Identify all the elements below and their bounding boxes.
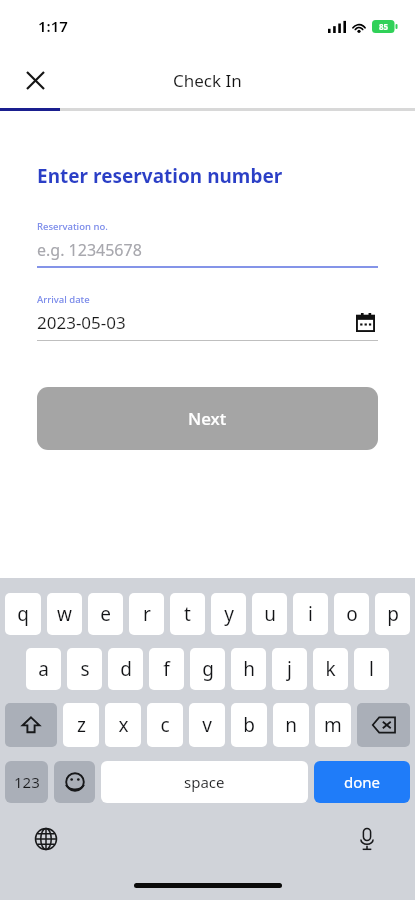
staticText: z — [77, 712, 86, 738]
button[interactable]: n — [273, 703, 309, 747]
staticText: w — [57, 601, 72, 627]
staticText: h — [243, 656, 255, 682]
button[interactable]: b — [231, 703, 267, 747]
staticText: n — [285, 712, 297, 738]
button[interactable]: l — [354, 648, 389, 690]
staticText: t — [184, 601, 191, 627]
button[interactable]: e.g. 12345678 — [37, 238, 378, 262]
button[interactable]: done — [314, 761, 410, 803]
button[interactable]: Shift — [5, 703, 57, 747]
button[interactable]: w — [47, 593, 82, 635]
button[interactable]: d — [108, 648, 143, 690]
button[interactable]: s — [67, 648, 102, 690]
button[interactable]: m — [315, 703, 351, 747]
button[interactable]: x — [105, 703, 141, 747]
staticText: s — [80, 656, 90, 682]
staticText: Enter reservation number — [37, 163, 283, 189]
button[interactable]: j — [272, 648, 307, 690]
button[interactable]: g — [190, 648, 225, 690]
button[interactable]: 2023-05-03 — [37, 309, 378, 335]
button[interactable]: z — [63, 703, 99, 747]
staticText: m — [324, 712, 342, 738]
button[interactable]: Backspace — [357, 703, 410, 747]
staticText: d — [120, 656, 132, 682]
staticText: v — [202, 712, 212, 738]
staticText: Reservation no. — [37, 220, 108, 233]
staticText: e.g. 12345678 — [37, 239, 142, 261]
staticText: 2023-05-03 — [37, 311, 352, 334]
button[interactable]: v — [189, 703, 225, 747]
staticText: a — [38, 656, 49, 682]
button[interactable]: h — [231, 648, 266, 690]
staticText: Arrival date — [37, 293, 90, 306]
staticText: j — [287, 656, 292, 682]
staticText: x — [118, 712, 129, 738]
button[interactable]: e — [88, 593, 123, 635]
staticText: space — [184, 772, 225, 792]
staticText: 123 — [14, 772, 40, 792]
button[interactable]: o — [334, 593, 369, 635]
staticText: c — [160, 712, 170, 738]
button[interactable]: a — [26, 648, 61, 690]
staticText: k — [325, 656, 336, 682]
staticText: f — [163, 656, 170, 682]
staticText: 1:17 — [38, 16, 68, 36]
other: Pick date — [352, 309, 378, 335]
staticText: i — [308, 601, 313, 627]
button[interactable]: p — [375, 593, 410, 635]
button[interactable]: Change keyboard — [28, 821, 64, 857]
button[interactable]: y — [211, 593, 246, 635]
staticText: b — [243, 712, 255, 738]
button[interactable]: Emoji — [54, 761, 95, 803]
staticText: e — [100, 601, 111, 627]
staticText: done — [344, 772, 381, 792]
button[interactable]: u — [252, 593, 287, 635]
button[interactable]: k — [313, 648, 348, 690]
button[interactable]: t — [170, 593, 205, 635]
staticText: Check In — [173, 69, 242, 92]
button[interactable]: q — [5, 593, 41, 635]
staticText: y — [224, 601, 234, 627]
button[interactable]: Close — [14, 59, 56, 101]
staticText: 85 — [379, 21, 389, 32]
staticText: p — [387, 601, 399, 627]
staticText: l — [369, 656, 374, 682]
staticText: Next — [188, 407, 227, 430]
staticText: o — [346, 601, 358, 627]
button[interactable]: c — [147, 703, 183, 747]
button[interactable]: 123 — [5, 761, 48, 803]
staticText: r — [143, 601, 151, 627]
button[interactable]: f — [149, 648, 184, 690]
button[interactable]: space — [101, 761, 308, 803]
button[interactable]: Voice input — [349, 821, 385, 857]
button[interactable]: i — [293, 593, 328, 635]
staticText: g — [202, 656, 214, 682]
staticText: u — [264, 601, 276, 627]
button[interactable]: r — [129, 593, 164, 635]
staticText: q — [17, 601, 29, 627]
button[interactable]: Next — [37, 387, 378, 450]
